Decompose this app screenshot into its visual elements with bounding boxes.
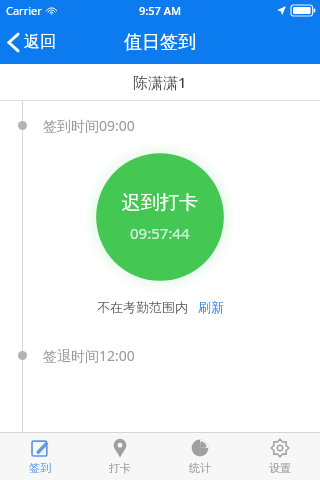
- button[interactable]: 迟到打卡: [74, 141, 246, 293]
- button[interactable]: 打卡: [80, 433, 160, 480]
- button[interactable]: 设置: [240, 433, 320, 480]
- staticText: 签到时间09:00: [43, 116, 135, 135]
- button[interactable]: 刷新: [198, 299, 224, 315]
- staticText: 迟到打卡: [122, 191, 198, 215]
- button[interactable]: 统计: [160, 433, 240, 480]
- button[interactable]: 签到: [0, 433, 80, 480]
- staticText: 刷新: [198, 299, 224, 315]
- staticText: 返回: [24, 32, 56, 52]
- staticText: 打卡: [109, 461, 131, 475]
- staticText: 值日签到: [124, 31, 196, 54]
- staticText: 设置: [269, 461, 291, 475]
- staticText: 陈潇潇1: [133, 72, 187, 92]
- staticText: Carrier: [6, 3, 42, 18]
- staticText: 统计: [189, 461, 211, 475]
- staticText: 9:57 AM: [139, 3, 182, 18]
- button[interactable]: 返回: [0, 26, 68, 58]
- staticText: 09:57:44: [130, 223, 190, 243]
- staticText: 签退时间12:00: [43, 346, 135, 365]
- staticText: 签到: [29, 461, 51, 475]
- staticText: 不在考勤范围内: [97, 299, 188, 315]
